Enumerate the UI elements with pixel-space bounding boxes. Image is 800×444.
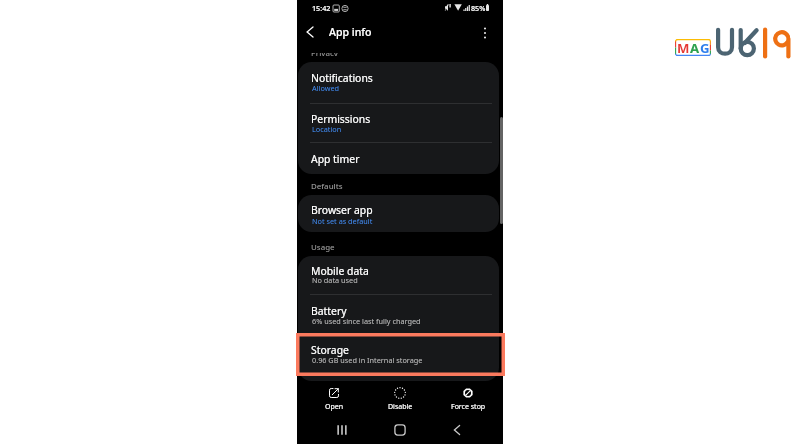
staticText: Mobile data: [311, 264, 369, 278]
button[interactable]: Open: [306, 383, 362, 413]
staticText: 6% used since last fully charged: [312, 316, 421, 326]
staticText: G: [700, 39, 710, 56]
staticText: No data used: [312, 275, 358, 285]
button[interactable]: Force stop: [440, 383, 496, 413]
button[interactable]: Back: [445, 418, 469, 442]
staticText: Browser app: [311, 203, 373, 217]
button[interactable]: More options: [476, 24, 494, 42]
button[interactable]: [298, 294, 499, 333]
staticText: Open: [325, 402, 344, 412]
button[interactable]: Navigate up: [300, 22, 320, 42]
staticText: Force stop: [451, 402, 486, 412]
button[interactable]: [298, 103, 499, 142]
staticText: Defaults: [311, 181, 343, 192]
staticText: 15:42: [312, 3, 331, 13]
button[interactable]: Disable: [372, 383, 428, 413]
staticText: Storage: [311, 343, 349, 357]
staticText: Location: [312, 124, 342, 134]
staticText: Privacy: [311, 53, 338, 56]
staticText: Battery: [311, 304, 347, 318]
staticText: Permissions: [311, 112, 371, 126]
staticText: App timer: [311, 152, 360, 166]
button[interactable]: Recents: [330, 418, 354, 442]
button[interactable]: [298, 62, 499, 103]
staticText: M: [677, 39, 690, 56]
staticText: Not set as default: [312, 216, 373, 226]
staticText: A: [690, 39, 700, 56]
staticText: 85%: [471, 3, 486, 13]
staticText: 0.96 GB used in Internal storage: [312, 355, 423, 365]
staticText: Usage: [311, 242, 335, 253]
button[interactable]: [298, 256, 499, 294]
staticText: Notifications: [311, 71, 373, 85]
staticText: Allowed: [312, 83, 340, 93]
staticText: App info: [329, 25, 372, 39]
button[interactable]: [298, 333, 499, 382]
button[interactable]: Home: [388, 418, 412, 442]
button[interactable]: [298, 195, 499, 232]
staticText: Disable: [388, 402, 413, 412]
button[interactable]: [298, 142, 499, 174]
